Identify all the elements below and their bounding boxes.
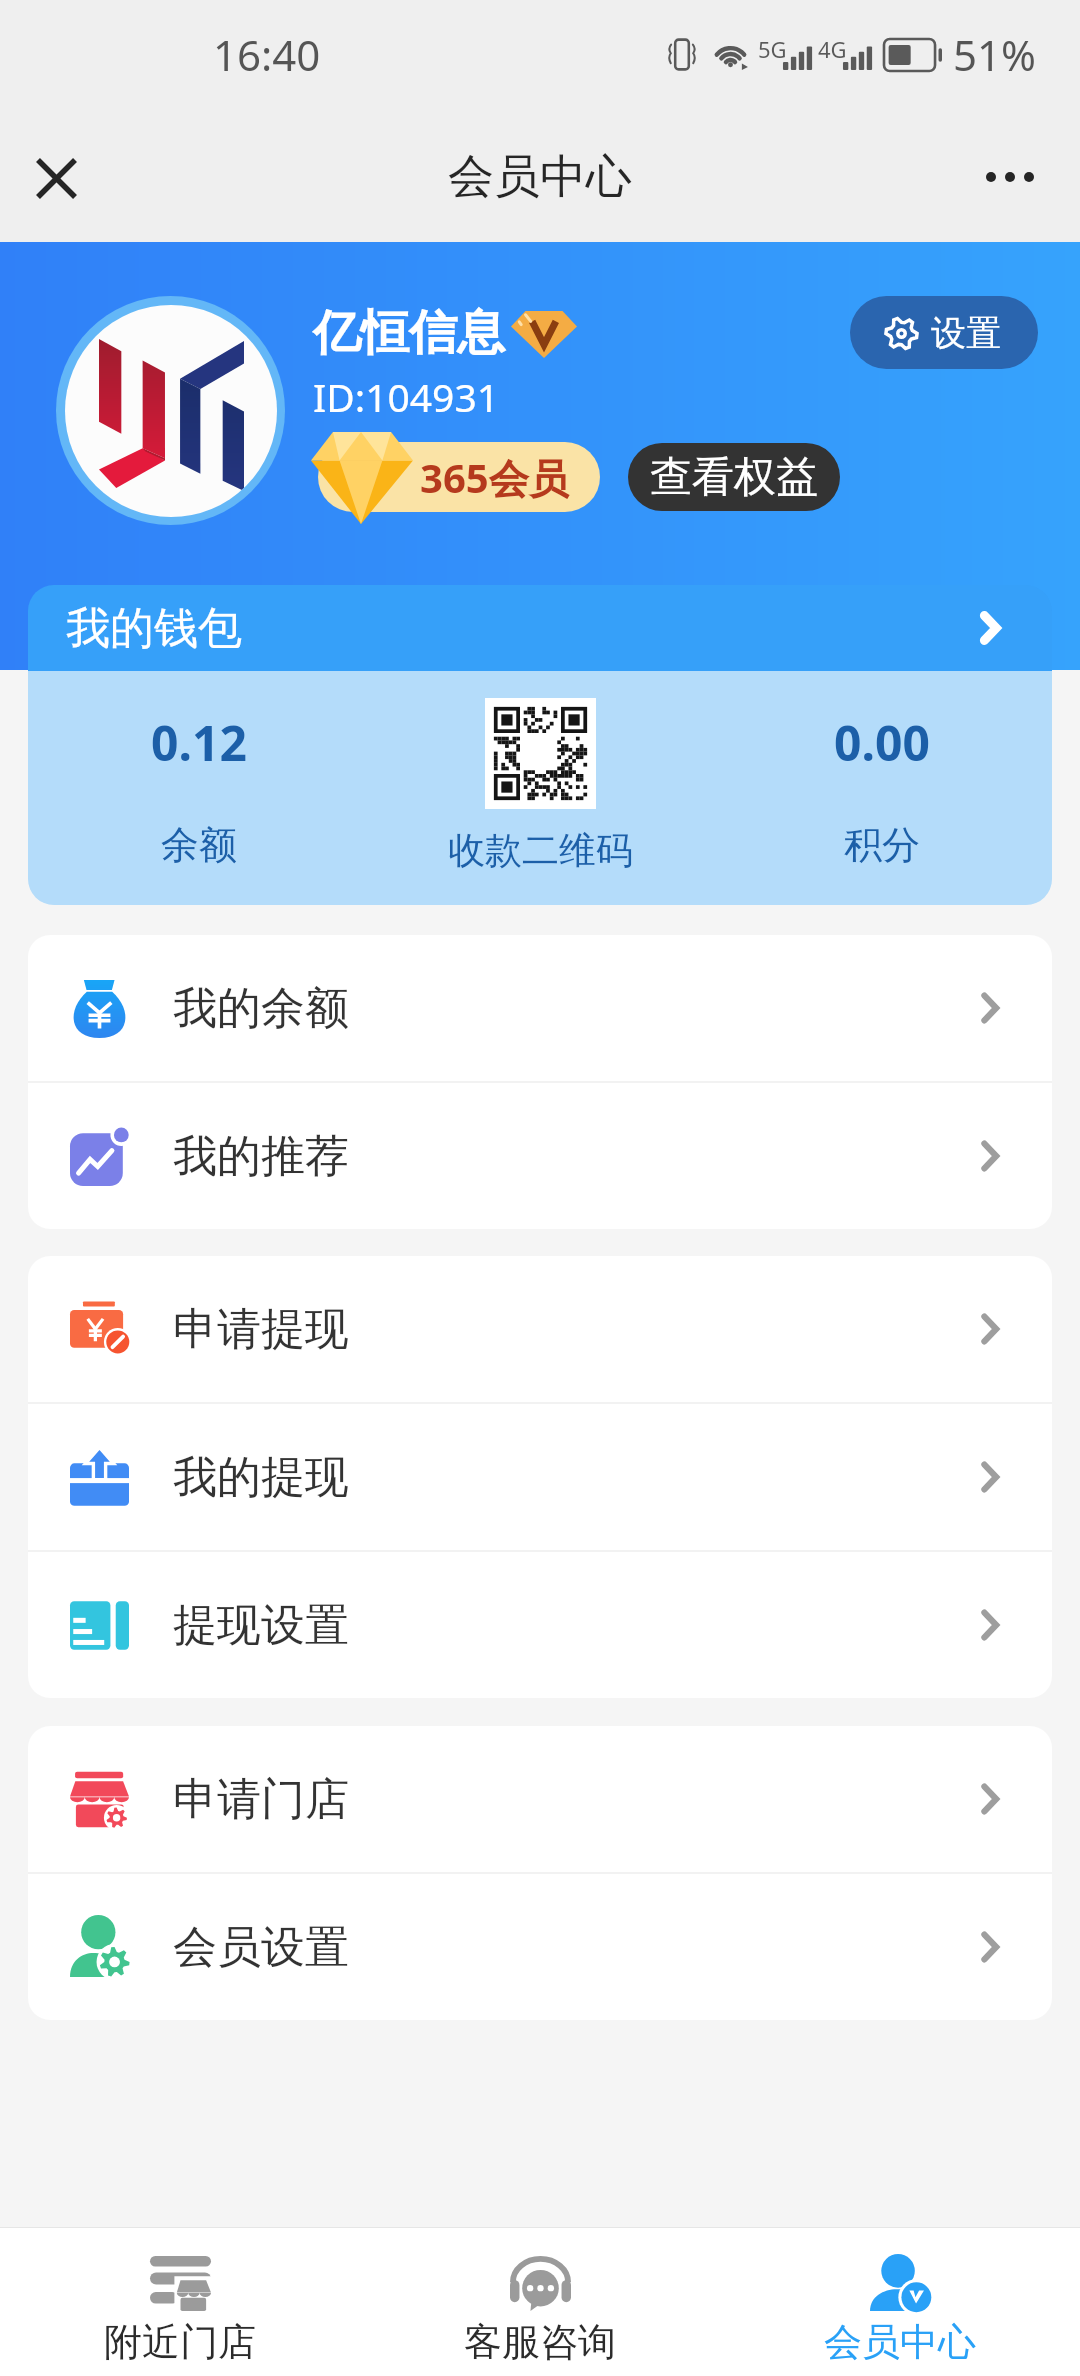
button[interactable]: 查看权益 xyxy=(628,443,840,511)
button[interactable]: 客服咨询 xyxy=(360,2228,720,2376)
staticText: 会员设置 xyxy=(173,1920,349,1975)
button[interactable]: 收款二维码 xyxy=(370,702,711,874)
button[interactable]: 我的余额 xyxy=(28,935,1052,1081)
staticText: ID:104931 xyxy=(313,370,499,423)
button[interactable]: 0.12 xyxy=(28,713,370,864)
staticText: 4G xyxy=(818,34,847,64)
staticText: 会员中心 xyxy=(448,148,632,206)
button[interactable]: 会员设置 xyxy=(28,1874,1052,2020)
staticText: 我的推荐 xyxy=(173,1129,349,1184)
staticText: 51% xyxy=(953,26,1036,83)
staticText: 附近门店 xyxy=(104,2318,256,2366)
staticText: 365会员 xyxy=(420,450,569,505)
staticText: 客服咨询 xyxy=(464,2318,616,2366)
button[interactable]: 提现设置 xyxy=(28,1552,1052,1698)
button[interactable]: 申请门店 xyxy=(28,1726,1052,1872)
staticText: 我的钱包 xyxy=(66,601,242,656)
button[interactable]: 我的钱包 xyxy=(28,585,1052,671)
staticText: 积分 xyxy=(844,821,920,869)
button[interactable]: 0.00 xyxy=(711,713,1052,864)
staticText: 0.00 xyxy=(834,710,930,775)
button[interactable]: More options xyxy=(967,134,1053,220)
button[interactable]: 申请提现 xyxy=(28,1256,1052,1402)
button[interactable]: 设置 xyxy=(850,296,1038,369)
button[interactable]: 我的提现 xyxy=(28,1404,1052,1550)
button[interactable]: 会员中心 xyxy=(720,2228,1080,2376)
staticText: 设置 xyxy=(931,311,1001,355)
button[interactable]: 365会员 xyxy=(318,442,600,512)
staticText: 亿恒信息 xyxy=(313,303,505,363)
staticText: 申请提现 xyxy=(173,1302,349,1357)
staticText: 0.12 xyxy=(151,710,247,775)
staticText: 会员中心 xyxy=(824,2318,976,2366)
staticText: 我的提现 xyxy=(173,1450,349,1505)
staticText: 我的余额 xyxy=(173,981,349,1036)
button[interactable]: Close xyxy=(12,134,98,220)
staticText: 提现设置 xyxy=(173,1598,349,1653)
staticText: 收款二维码 xyxy=(448,827,633,874)
staticText: 余额 xyxy=(161,821,237,869)
staticText: 查看权益 xyxy=(650,451,818,504)
button[interactable]: 附近门店 xyxy=(0,2228,360,2376)
button[interactable]: 我的推荐 xyxy=(28,1083,1052,1229)
staticText: 16:40 xyxy=(213,26,321,83)
staticText: 5G xyxy=(758,34,787,64)
staticText: 申请门店 xyxy=(173,1772,349,1827)
